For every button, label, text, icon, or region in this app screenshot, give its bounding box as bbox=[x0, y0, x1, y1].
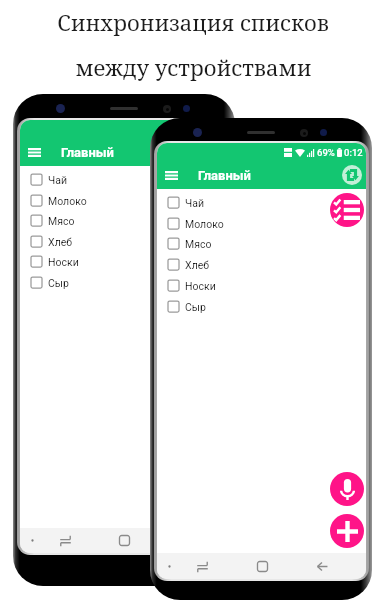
staticText: Главный bbox=[198, 168, 251, 183]
button[interactable]: Хлеб bbox=[157, 254, 366, 275]
staticText: Носки bbox=[48, 256, 79, 268]
button[interactable]: Хлеб bbox=[20, 231, 229, 252]
button[interactable]: Носки bbox=[157, 275, 366, 296]
button[interactable]: Носки bbox=[20, 251, 229, 272]
button[interactable]: Сыр bbox=[20, 272, 229, 293]
staticText: 69% bbox=[317, 147, 335, 158]
button[interactable]: Мясо bbox=[157, 233, 366, 254]
button[interactable]: Чай bbox=[20, 169, 229, 190]
button[interactable]: Add item bbox=[330, 514, 364, 548]
staticText: Чай bbox=[48, 174, 67, 186]
button[interactable]: Recent apps bbox=[191, 553, 213, 579]
staticText: Чай bbox=[185, 197, 204, 209]
button[interactable]: Voice input bbox=[330, 472, 364, 506]
button[interactable]: Сыр bbox=[157, 296, 366, 317]
button[interactable]: Home bbox=[113, 528, 135, 553]
staticText: Мясо bbox=[185, 238, 212, 250]
button[interactable]: Back bbox=[311, 553, 333, 579]
button[interactable]: Мясо bbox=[20, 210, 229, 231]
staticText: Сыр bbox=[48, 277, 69, 289]
staticText: 0:12 bbox=[344, 147, 363, 158]
staticText: Хлеб bbox=[185, 259, 210, 271]
staticText: Молоко bbox=[48, 195, 87, 207]
button[interactable]: Recent apps bbox=[54, 528, 76, 553]
button[interactable]: Молоко bbox=[157, 213, 366, 234]
button[interactable]: Чай bbox=[157, 192, 366, 213]
button[interactable]: All lists bbox=[330, 193, 364, 227]
button[interactable]: Open navigation menu bbox=[160, 164, 182, 186]
button[interactable]: Home bbox=[251, 553, 273, 579]
button[interactable]: Menu bbox=[158, 553, 180, 579]
button[interactable]: Synchronize lists bbox=[341, 164, 363, 186]
staticText: Сыр bbox=[185, 301, 206, 313]
button[interactable]: Молоко bbox=[20, 190, 229, 211]
staticText: между устройствами bbox=[75, 52, 312, 82]
staticText: Синхронизация списков bbox=[57, 7, 329, 37]
staticText: Мясо bbox=[48, 215, 75, 227]
staticText: Молоко bbox=[185, 218, 224, 230]
staticText: Главный bbox=[61, 145, 114, 160]
staticText: Хлеб bbox=[48, 236, 73, 248]
button[interactable]: Open navigation menu bbox=[23, 141, 45, 163]
button[interactable]: Menu bbox=[21, 528, 43, 553]
staticText: Носки bbox=[185, 280, 216, 292]
